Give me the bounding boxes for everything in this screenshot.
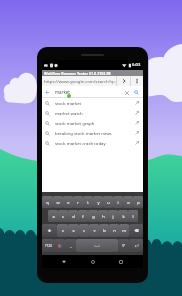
button[interactable]: !?: [118, 239, 129, 252]
button[interactable]: Insert suggestion: [134, 110, 140, 116]
staticText: 6:03: [132, 62, 141, 68]
staticText: u: [107, 200, 110, 205]
staticText: k: [122, 214, 125, 219]
button[interactable]: p: [133, 196, 143, 208]
button[interactable]: Search: [133, 89, 140, 96]
button[interactable]: market watch: [42, 108, 143, 118]
button[interactable]: Insert suggestion: [134, 130, 140, 136]
button[interactable]: [42, 224, 57, 237]
button[interactable]: w: [53, 196, 63, 208]
button[interactable]: stock market graph: [42, 118, 143, 128]
staticText: h: [102, 214, 105, 219]
button[interactable]: [129, 224, 143, 237]
button[interactable]: [129, 239, 143, 252]
staticText: l: [132, 214, 134, 219]
button[interactable]: Home: [86, 255, 100, 268]
staticText: stock market graph: [55, 120, 95, 126]
staticText: ,: [70, 243, 72, 248]
staticText: a: [52, 214, 55, 219]
button[interactable]: a: [48, 210, 58, 222]
button[interactable]: https://www.google.com/search?q=: [42, 76, 116, 86]
button[interactable]: x: [68, 224, 79, 237]
staticText: d: [72, 214, 75, 219]
staticText: c: [83, 228, 85, 233]
staticText: e: [67, 200, 70, 205]
button[interactable]: Clear: [123, 89, 130, 96]
staticText: stock market crash today: [55, 140, 106, 146]
staticText: w: [56, 200, 60, 205]
staticText: s: [62, 214, 64, 219]
button[interactable]: b: [99, 224, 109, 237]
button[interactable]: g: [88, 210, 98, 222]
staticText: z: [62, 228, 64, 233]
staticText: g: [92, 214, 95, 219]
staticText: m: [122, 228, 126, 233]
staticText: market watch: [55, 110, 83, 116]
staticText: x: [72, 228, 75, 233]
button[interactable]: Recent apps: [114, 255, 128, 268]
button[interactable]: z: [57, 224, 68, 237]
staticText: o: [127, 200, 130, 205]
staticText: r: [77, 200, 79, 205]
button[interactable]: v: [89, 224, 99, 237]
button[interactable]: More options: [131, 76, 143, 86]
staticText: WebView Browser Tester 61.0.3163.98: [44, 71, 111, 76]
staticText: breaking stock market news: [55, 130, 112, 136]
staticText: stock market: [55, 100, 82, 106]
button[interactable]: breaking stock market news: [42, 128, 143, 138]
button[interactable]: o: [123, 196, 133, 208]
button[interactable]: u: [103, 196, 113, 208]
staticText: f: [82, 214, 84, 219]
button[interactable]: Insert suggestion: [134, 140, 140, 146]
button[interactable]: j: [108, 210, 118, 222]
staticText: p: [137, 200, 140, 205]
staticText: i: [117, 200, 119, 205]
staticText: !?: [122, 244, 125, 248]
button[interactable]: stock market crash today: [42, 138, 143, 148]
staticText: https://www.google.com/search?q=: [44, 78, 116, 84]
staticText: market: [55, 89, 70, 95]
staticText: q: [46, 200, 49, 205]
button[interactable]: Insert suggestion: [134, 120, 140, 126]
button[interactable]: ?123: [42, 239, 54, 252]
button[interactable]: y: [93, 196, 103, 208]
staticText: t: [87, 200, 89, 205]
button[interactable]: m: [119, 224, 129, 237]
button[interactable]: [54, 239, 65, 252]
button[interactable]: q: [42, 196, 53, 208]
button[interactable]: r: [73, 196, 83, 208]
button[interactable]: Go: [117, 76, 130, 86]
button[interactable]: stock market: [42, 98, 143, 108]
staticText: v: [93, 228, 96, 233]
button[interactable]: t: [83, 196, 93, 208]
staticText: b: [103, 228, 106, 233]
button[interactable]: Back: [57, 255, 71, 268]
button[interactable]: f: [78, 210, 88, 222]
staticText: n: [113, 228, 116, 233]
button[interactable]: n: [109, 224, 119, 237]
button[interactable]: k: [118, 210, 128, 222]
button[interactable]: c: [79, 224, 89, 237]
button[interactable]: e: [63, 196, 73, 208]
button[interactable]: i: [113, 196, 123, 208]
staticText: j: [112, 214, 114, 219]
button[interactable]: ,: [65, 239, 76, 252]
staticText: ?123: [45, 244, 52, 248]
button[interactable]: s: [58, 210, 68, 222]
button[interactable]: [76, 239, 118, 252]
button[interactable]: d: [68, 210, 78, 222]
button[interactable]: Insert suggestion: [134, 100, 140, 106]
staticText: y: [97, 200, 100, 205]
button[interactable]: h: [98, 210, 108, 222]
button[interactable]: l: [128, 210, 138, 222]
button[interactable]: market: [42, 86, 143, 98]
